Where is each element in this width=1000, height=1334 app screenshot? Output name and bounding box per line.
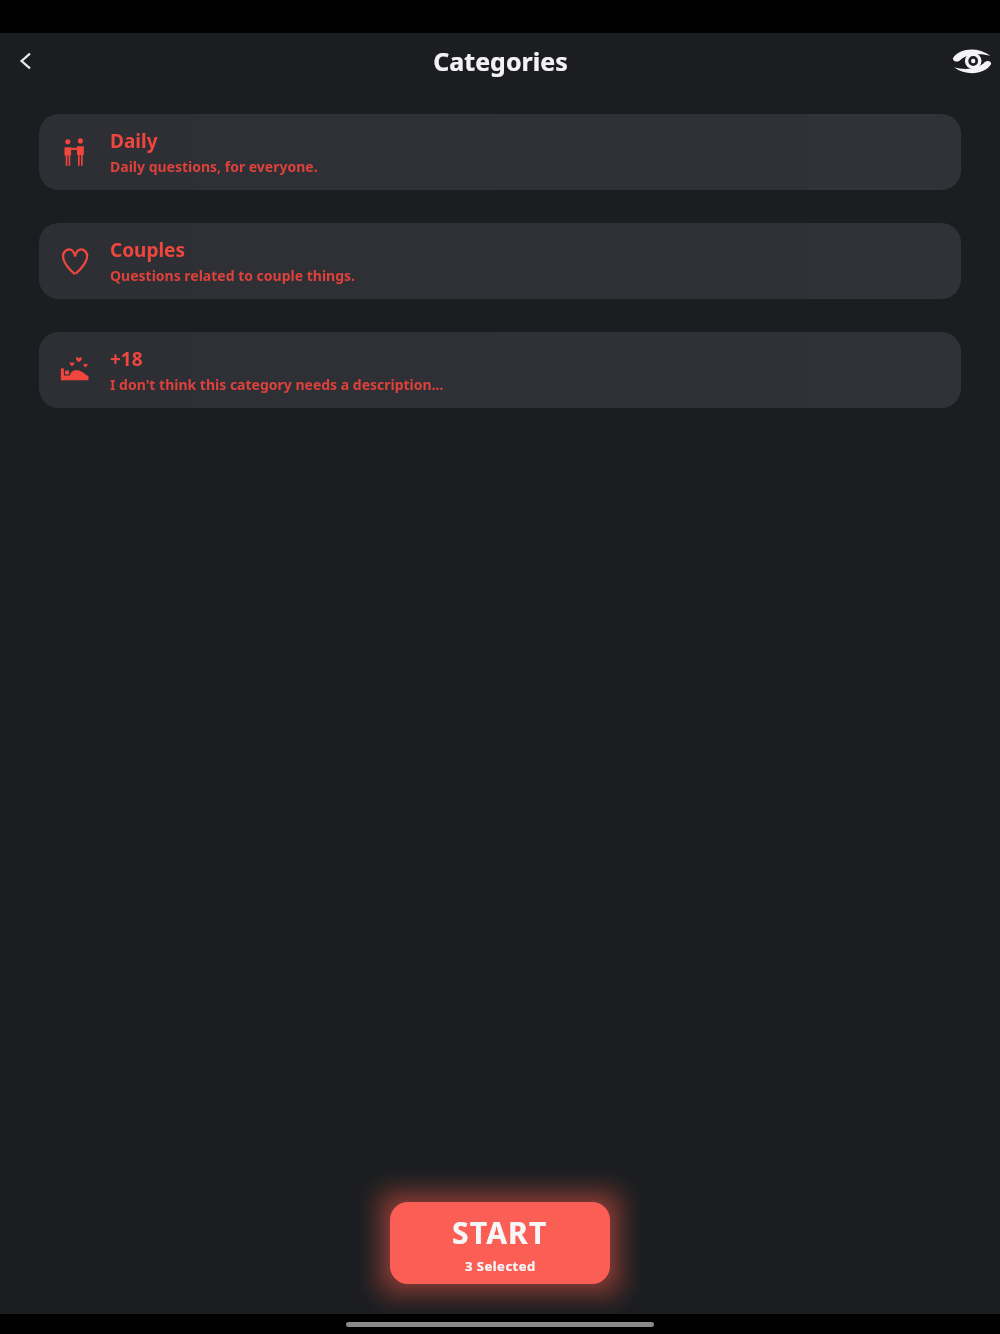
button[interactable]: +18: [39, 332, 961, 408]
staticText: Questions related to couple things.: [110, 266, 355, 285]
staticText: 3 Selected: [465, 1257, 536, 1275]
staticText: +18: [110, 346, 143, 372]
staticText: Categories: [433, 44, 568, 78]
staticText: I don't think this category needs a desc…: [110, 375, 444, 394]
button[interactable]: START: [390, 1202, 610, 1284]
staticText: START: [452, 1212, 548, 1253]
staticText: Daily: [110, 128, 158, 154]
button[interactable]: Couples: [39, 223, 961, 299]
button[interactable]: Daily: [39, 114, 961, 190]
button[interactable]: Back: [4, 39, 48, 83]
staticText: Couples: [110, 237, 185, 263]
button[interactable]: App logo: [948, 37, 996, 85]
staticText: Daily questions, for everyone.: [110, 157, 318, 176]
